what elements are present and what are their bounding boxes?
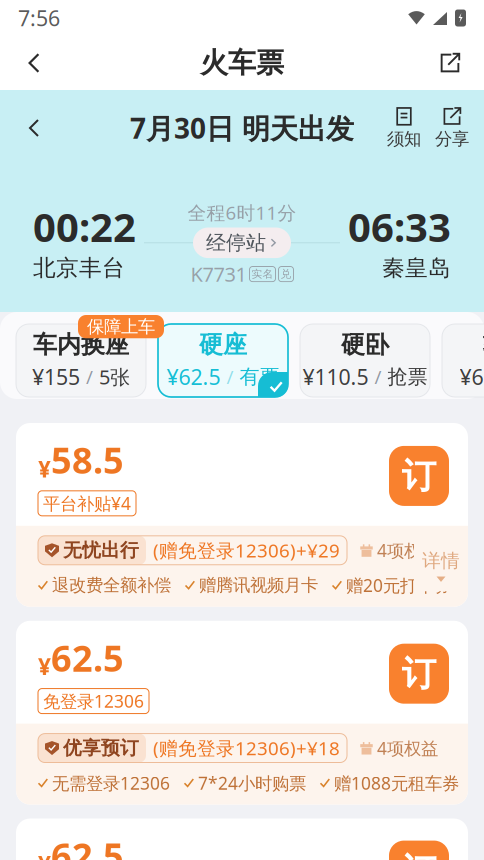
button[interactable]: 返回 (8, 36, 60, 90)
staticText: 7月30日 明天出发 (130, 109, 354, 147)
button[interactable]: 前一天 (10, 100, 58, 156)
staticText: 62.5 (51, 634, 124, 682)
staticText: 06:33 (348, 200, 451, 253)
staticText: 62.5 (51, 831, 124, 860)
staticText: ¥110.5 (302, 363, 368, 391)
staticText: 北京丰台 (33, 254, 125, 282)
staticText: 赠腾讯视频月卡 (199, 575, 318, 596)
staticText: 赠20元打车券 (346, 574, 451, 597)
button[interactable]: 详情 (414, 541, 468, 591)
staticText: 订 (401, 455, 436, 497)
staticText: 订 (401, 849, 436, 860)
button[interactable]: 车内换座 (16, 324, 146, 397)
staticText: 4项权益 (377, 539, 438, 562)
staticText: 硬座 (199, 330, 247, 360)
button[interactable]: ¥ (16, 818, 468, 860)
button[interactable]: ¥ (16, 621, 468, 805)
staticText: 赠1088元租车券 (334, 771, 459, 794)
staticText: 有票 (239, 364, 279, 389)
staticText: 抢票 (387, 364, 427, 389)
staticText: 7:56 (18, 4, 60, 32)
staticText: 7*24小时购票 (198, 771, 306, 794)
button[interactable]: 保障上车 (78, 315, 164, 338)
staticText: 订 (401, 652, 436, 695)
button[interactable]: 在应用中打开 (424, 36, 476, 90)
staticText: K7731 (190, 261, 246, 287)
staticText: ¥62.5 (166, 363, 220, 391)
button[interactable]: 硬卧 (300, 324, 430, 397)
staticText: (赠免登录12306)+¥18 (153, 736, 340, 760)
staticText: 00:22 (33, 200, 136, 253)
staticText: 兑 (280, 267, 291, 281)
button[interactable]: 硬座 (158, 324, 288, 397)
staticText: 优享预订 (63, 737, 139, 759)
staticText: / (226, 364, 233, 389)
button[interactable]: 软卧 (442, 324, 484, 397)
button[interactable]: 须知 (382, 100, 426, 156)
staticText: 5张 (99, 363, 130, 390)
staticText: 经停站 (206, 230, 266, 255)
staticText: 车内换座 (33, 330, 129, 360)
staticText: 须知 (387, 128, 421, 150)
staticText: ¥ (38, 849, 51, 860)
staticText: ¥155 (32, 363, 80, 391)
staticText: / (374, 364, 381, 389)
staticText: 全程6时11分 (187, 200, 296, 225)
staticText: ¥ (38, 454, 51, 484)
staticText: 保障上车 (87, 316, 155, 337)
staticText: 秦皇岛 (382, 254, 451, 282)
staticText: 实名 (251, 267, 273, 281)
staticText: 无需登录12306 (52, 771, 170, 794)
staticText: 平台补贴¥4 (43, 492, 131, 515)
staticText: ¥62 (459, 363, 484, 391)
staticText: 分享 (435, 128, 469, 150)
staticText: 58.5 (51, 436, 124, 484)
staticText: (赠免登录12306)+¥29 (153, 538, 340, 563)
staticText: 4项权益 (377, 737, 438, 760)
staticText: 免登录12306 (43, 690, 144, 713)
staticText: / (86, 364, 93, 389)
button[interactable]: ¥ (16, 423, 468, 607)
button[interactable]: 分享 (430, 100, 474, 156)
staticText: 退改费全额补偿 (52, 575, 171, 596)
staticText: 无忧出行 (63, 539, 139, 562)
staticText: ¥ (38, 651, 51, 682)
staticText: 硬卧 (341, 330, 389, 360)
staticText: 软卧 (483, 330, 484, 360)
staticText: 详情 (422, 549, 460, 572)
staticText: 火车票 (200, 46, 284, 80)
